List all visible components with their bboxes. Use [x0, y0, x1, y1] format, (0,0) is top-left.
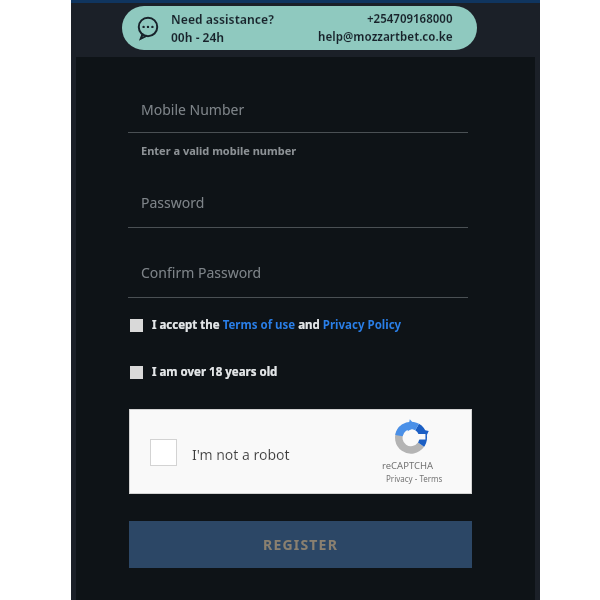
staticText: Privacy - Terms [386, 473, 443, 484]
other: reCAPTCHA [394, 420, 428, 454]
button[interactable]: I am over 18 years old [126, 360, 471, 384]
other: Chat support [137, 17, 159, 39]
button[interactable]: Chat support [122, 6, 477, 50]
staticText: help@mozzartbet.co.ke [318, 29, 453, 45]
staticText: REGISTER [263, 535, 339, 554]
staticText: Confirm Password [141, 263, 262, 282]
staticText: 00h - 24h [171, 29, 225, 45]
staticText: Need assistance? [171, 11, 274, 27]
button[interactable]: I'm not a robot [129, 409, 472, 494]
staticText: Password [141, 193, 205, 212]
staticText: I am over 18 years old [152, 364, 278, 380]
staticText: reCAPTCHA [382, 459, 434, 472]
staticText: +254709168000 [367, 11, 453, 27]
button[interactable]: REGISTER [129, 521, 472, 568]
staticText: I'm not a robot [192, 445, 290, 464]
staticText: I accept the Terms of use and Privacy Po… [152, 317, 402, 333]
staticText: Mobile Number [141, 100, 245, 119]
button[interactable]: I accept the Terms of use and Privacy Po… [126, 313, 471, 337]
staticText: Enter a valid mobile number [141, 143, 297, 158]
